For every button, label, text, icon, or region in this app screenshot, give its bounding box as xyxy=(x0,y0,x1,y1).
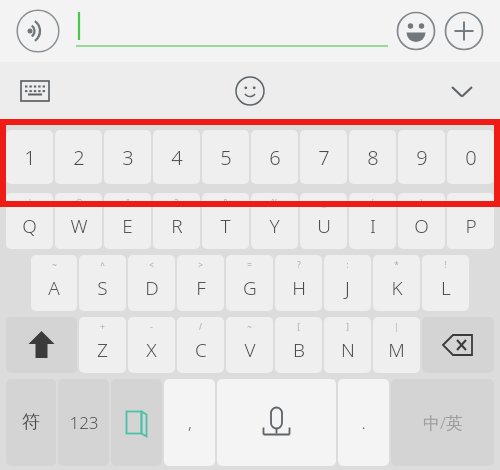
button[interactable]: 7 xyxy=(300,130,347,184)
button[interactable]: ( xyxy=(349,193,396,249)
button[interactable]: " xyxy=(104,193,151,249)
button[interactable]: Emoticon panel xyxy=(234,75,266,107)
button[interactable]: Voice input xyxy=(217,379,336,466)
staticText: % xyxy=(271,197,278,208)
staticText: Z xyxy=(97,337,108,363)
button[interactable]: - xyxy=(128,317,175,373)
button[interactable]: ~ xyxy=(226,317,273,373)
staticText: 0 xyxy=(465,144,477,171)
staticText: - xyxy=(469,197,472,208)
staticText: U xyxy=(317,213,331,239)
button[interactable]: < xyxy=(128,255,175,311)
button[interactable]: 9 xyxy=(398,130,445,184)
button[interactable]: 3 xyxy=(153,193,200,249)
button[interactable]: + xyxy=(79,317,126,373)
staticText: ( xyxy=(371,197,374,208)
button[interactable]: % xyxy=(251,193,298,249)
staticText: 6 xyxy=(269,144,281,171)
button[interactable]: , xyxy=(164,379,215,466)
button[interactable]: ^ xyxy=(79,255,126,311)
button[interactable]: 符 xyxy=(6,379,56,466)
staticText: = xyxy=(247,259,252,270)
button[interactable]: 5 xyxy=(202,130,249,184)
staticText: ~ xyxy=(52,259,57,270)
staticText: * xyxy=(394,259,399,270)
button[interactable]: 3 xyxy=(104,130,151,184)
button[interactable]: ~ xyxy=(31,255,77,311)
button[interactable]: More options xyxy=(444,11,484,51)
button[interactable]: * xyxy=(373,255,420,311)
button[interactable]: - xyxy=(447,193,494,249)
button[interactable]: ' xyxy=(6,193,53,249)
staticText: C xyxy=(195,337,207,363)
staticText: & xyxy=(223,197,229,208)
button[interactable]: ) xyxy=(398,193,445,249)
button[interactable]: 1 xyxy=(6,130,53,184)
button[interactable]: Hide keyboard xyxy=(444,73,480,109)
staticText: S xyxy=(97,275,108,301)
button[interactable]: = xyxy=(226,255,273,311)
staticText: H xyxy=(292,275,306,301)
button[interactable]: Backspace xyxy=(422,317,494,373)
button[interactable]: 4 xyxy=(153,130,200,184)
staticText: G xyxy=(243,275,257,301)
staticText: [ xyxy=(297,321,300,332)
staticText: : xyxy=(346,259,349,270)
button[interactable]: Emoji xyxy=(396,11,436,51)
staticText: / xyxy=(199,321,202,332)
staticText: _ xyxy=(322,197,326,208)
staticText: I xyxy=(370,213,376,239)
button[interactable]: : xyxy=(324,255,371,311)
staticText: < xyxy=(149,259,154,270)
button[interactable]: _ xyxy=(300,193,347,249)
staticText: W xyxy=(70,213,88,239)
staticText: . xyxy=(361,411,366,434)
button[interactable]: / xyxy=(177,317,224,373)
button[interactable]: @ xyxy=(55,193,102,249)
staticText: ! xyxy=(444,259,447,270)
staticText: ' xyxy=(29,197,31,208)
staticText: B xyxy=(293,337,305,363)
staticText: 123 xyxy=(69,411,99,434)
staticText: + xyxy=(100,321,105,332)
button[interactable]: | xyxy=(373,317,420,373)
button[interactable]: Voice input xyxy=(16,9,60,53)
button[interactable]: [ xyxy=(275,317,322,373)
staticText: A xyxy=(48,275,60,301)
staticText: V xyxy=(244,337,256,363)
staticText: - xyxy=(150,321,153,332)
button[interactable]: 8 xyxy=(349,130,396,184)
staticText: @ xyxy=(75,197,83,208)
button[interactable]: 2 xyxy=(55,130,102,184)
staticText: | xyxy=(394,321,399,332)
staticText: 9 xyxy=(416,144,428,171)
staticText: " xyxy=(126,197,130,208)
button[interactable] xyxy=(76,8,388,54)
staticText: N xyxy=(341,337,355,363)
staticText: K xyxy=(391,275,403,301)
button[interactable]: > xyxy=(177,255,224,311)
staticText: Q xyxy=(22,213,37,239)
button[interactable]: 123 xyxy=(58,379,109,466)
staticText: 3 xyxy=(174,197,179,208)
staticText: 7 xyxy=(318,144,330,171)
staticText: J xyxy=(345,275,350,301)
staticText: X xyxy=(146,337,157,363)
button[interactable]: ] xyxy=(324,317,371,373)
staticText: M xyxy=(388,337,405,363)
button[interactable]: & xyxy=(202,193,249,249)
staticText: Y xyxy=(269,213,280,239)
button[interactable]: 0 xyxy=(447,130,494,184)
button[interactable]: Shift xyxy=(6,317,77,373)
staticText: E xyxy=(122,213,133,239)
button[interactable]: 中/英 xyxy=(391,379,494,466)
button[interactable]: Keyboard settings xyxy=(20,79,50,103)
staticText: O xyxy=(414,213,429,239)
button[interactable]: ? xyxy=(275,255,322,311)
button[interactable]: Switch language xyxy=(111,379,162,466)
staticText: R xyxy=(171,213,183,239)
button[interactable]: 6 xyxy=(251,130,298,184)
button[interactable]: ! xyxy=(422,255,469,311)
staticText: T xyxy=(220,213,231,239)
